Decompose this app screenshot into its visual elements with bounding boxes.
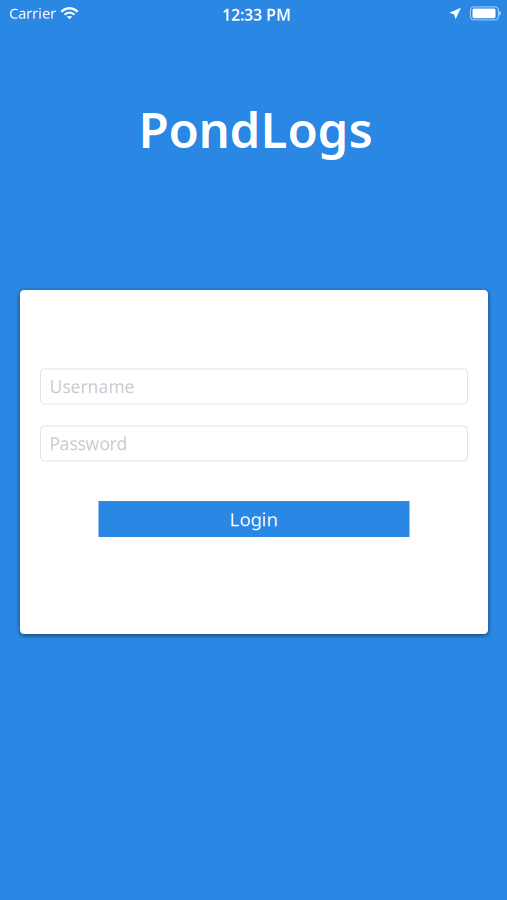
staticText: Carrier xyxy=(9,3,56,23)
staticText: Login xyxy=(229,507,278,531)
button[interactable]: Login xyxy=(98,501,409,537)
staticText: 12:33 PM xyxy=(222,4,291,25)
staticText: PondLogs xyxy=(138,96,372,161)
button[interactable]: Password xyxy=(40,426,467,461)
staticText: Password xyxy=(49,432,127,455)
staticText: Username xyxy=(49,375,134,398)
button[interactable]: Username xyxy=(40,369,467,404)
